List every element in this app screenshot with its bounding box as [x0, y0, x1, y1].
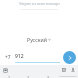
button[interactable]: 3: [38, 75, 58, 78]
button[interactable]: Русский: [0, 36, 78, 43]
button[interactable]: 1: [0, 75, 19, 78]
button[interactable]: Continue: [63, 51, 76, 64]
button[interactable]: Clipboard: [2, 67, 8, 73]
staticText: +7: [5, 54, 11, 61]
staticText: 1: [8, 75, 11, 78]
button[interactable]: 912: [15, 52, 60, 63]
button[interactable]: Settings: [61, 67, 67, 73]
staticText: 912: [15, 53, 24, 60]
staticText: 2: [27, 75, 30, 78]
staticText: Telegram is a secure messenger: [19, 2, 60, 6]
button[interactable]: +7: [2, 51, 14, 63]
button[interactable]: Voice input: [70, 67, 76, 73]
staticText: Русский: [27, 36, 47, 43]
staticText: 3: [47, 75, 50, 78]
staticText: Confirm country code and phone: [20, 7, 58, 10]
button[interactable]: 2: [19, 75, 38, 78]
